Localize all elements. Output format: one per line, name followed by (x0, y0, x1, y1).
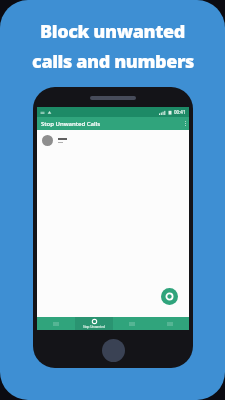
button[interactable] (37, 130, 189, 151)
button[interactable]: Stop Unwanted Calls (75, 317, 113, 330)
staticText: 00:41 (174, 109, 186, 115)
staticText: Stop Unwanted Calls (41, 120, 101, 128)
button[interactable]: Home (102, 339, 125, 362)
staticText: Block unwanted (40, 19, 185, 44)
button[interactable]: Recent (37, 317, 75, 330)
button[interactable]: Settings (151, 317, 189, 330)
button[interactable]: Blocked (113, 317, 151, 330)
staticText: calls and numbers (32, 49, 194, 74)
button[interactable]: Add blocked number (161, 288, 178, 305)
staticText: Stop Unwanted (83, 325, 105, 329)
button[interactable]: More options (185, 121, 186, 126)
button[interactable]: Stop Unwanted Calls (37, 117, 189, 130)
